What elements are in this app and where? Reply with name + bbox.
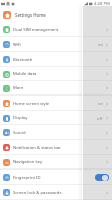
staticText: on xyxy=(98,101,103,106)
staticText: Dual SIM management xyxy=(13,27,105,33)
staticText: More xyxy=(13,85,105,91)
staticText: Settings Home xyxy=(15,12,46,18)
staticText: Display xyxy=(13,115,97,121)
button[interactable]: Screen lock & passwords xyxy=(0,185,112,200)
staticText: on xyxy=(98,42,103,47)
staticText: Navigation key xyxy=(13,159,105,165)
staticText: Bluetooth xyxy=(13,57,105,63)
staticText: Fingerprint ID xyxy=(13,175,95,181)
staticText: Notification & status bar xyxy=(13,145,105,151)
button[interactable]: Notification & status bar xyxy=(0,140,112,155)
button[interactable]: WiFi xyxy=(0,37,112,52)
button[interactable]: Bluetooth xyxy=(0,52,112,67)
staticText: Screen lock & passwords xyxy=(13,190,105,196)
button[interactable]: Fingerprint ID xyxy=(0,170,112,185)
button[interactable]: More xyxy=(0,81,112,95)
button[interactable]: Settings Home xyxy=(0,7,112,22)
button[interactable]: Navigation key xyxy=(0,155,112,169)
staticText: WiFi xyxy=(13,42,98,48)
button[interactable]: Home screen style xyxy=(0,96,112,111)
staticText: Sound xyxy=(13,130,105,136)
staticText: Mobile data xyxy=(13,71,105,77)
staticText: Home screen style xyxy=(13,101,98,107)
button[interactable]: Display xyxy=(0,111,112,125)
staticText: 4:28 PM xyxy=(94,1,110,7)
staticText: off xyxy=(97,116,103,121)
button[interactable]: Dual SIM management xyxy=(0,22,112,37)
button[interactable]: Sound xyxy=(0,125,112,140)
button[interactable]: Mobile data xyxy=(0,67,112,81)
